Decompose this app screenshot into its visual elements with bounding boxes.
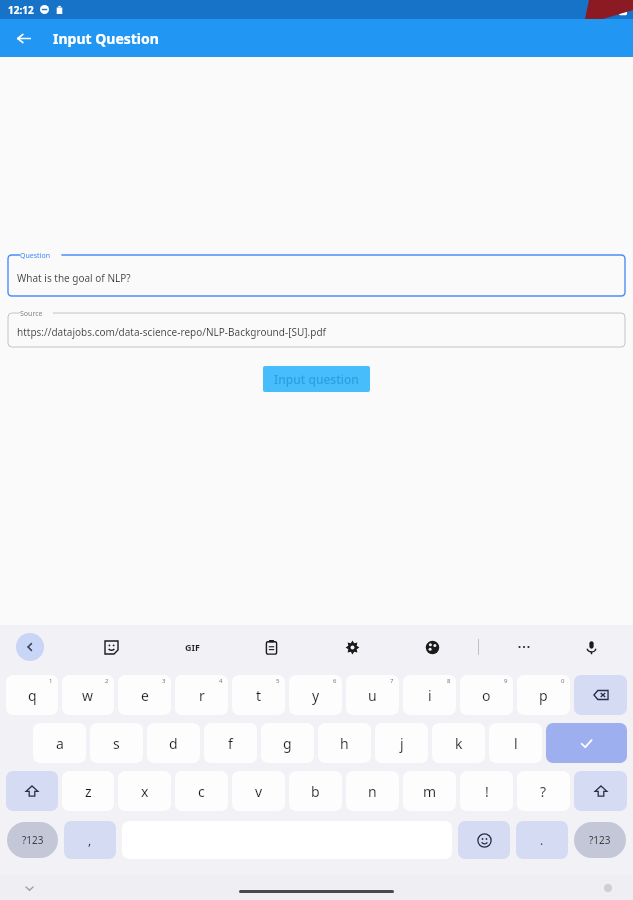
staticText: 2: [105, 677, 109, 685]
button[interactable]: i: [403, 675, 456, 715]
button[interactable]: Source: [8, 313, 625, 347]
button[interactable]: t: [232, 675, 285, 715]
button[interactable]: k: [432, 723, 485, 763]
button[interactable]: Keyboard switcher: [599, 879, 617, 897]
button[interactable]: ?: [517, 771, 570, 811]
button[interactable]: Stickers: [97, 633, 125, 661]
staticText: y: [312, 686, 320, 705]
button[interactable]: ,: [64, 821, 116, 859]
staticText: o: [482, 686, 491, 705]
button[interactable]: h: [318, 723, 371, 763]
staticText: 5: [276, 677, 280, 685]
staticText: k: [455, 734, 463, 753]
button[interactable]: ?123: [7, 822, 58, 858]
button[interactable]: Input question: [263, 366, 370, 392]
button[interactable]: Question: [8, 255, 625, 296]
button[interactable]: GIF: [178, 633, 206, 661]
button[interactable]: n: [346, 771, 399, 811]
staticText: e: [141, 686, 149, 705]
button[interactable]: Hide keyboard: [18, 877, 40, 899]
staticText: 6: [333, 677, 337, 685]
staticText: s: [113, 734, 120, 753]
button[interactable]: Backspace: [574, 675, 627, 715]
staticText: i: [428, 686, 432, 705]
staticText: 0: [561, 677, 565, 685]
staticText: https://datajobs.com/data-science-repo/N…: [17, 325, 326, 339]
staticText: Question: [20, 251, 50, 261]
button[interactable]: d: [147, 723, 200, 763]
button[interactable]: v: [232, 771, 285, 811]
button[interactable]: .: [516, 821, 568, 859]
staticText: a: [56, 734, 64, 753]
button[interactable]: c: [175, 771, 228, 811]
button[interactable]: l: [489, 723, 542, 763]
button[interactable]: Themes: [418, 633, 446, 661]
button[interactable]: j: [375, 723, 428, 763]
staticText: t: [256, 686, 262, 705]
staticText: !: [485, 782, 489, 801]
staticText: q: [28, 686, 37, 705]
staticText: 1: [49, 677, 53, 685]
staticText: g: [283, 734, 292, 753]
staticText: Input Question: [53, 29, 159, 48]
staticText: b: [311, 782, 320, 801]
staticText: u: [368, 686, 377, 705]
staticText: z: [85, 782, 92, 801]
staticText: h: [340, 734, 349, 753]
staticText: ?: [540, 782, 547, 801]
button[interactable]: e: [118, 675, 171, 715]
button[interactable]: r: [175, 675, 228, 715]
staticText: w: [82, 686, 94, 705]
staticText: p: [539, 686, 548, 705]
button[interactable]: q: [6, 675, 58, 715]
button[interactable]: s: [90, 723, 143, 763]
button[interactable]: f: [204, 723, 257, 763]
button[interactable]: Shift: [6, 771, 58, 811]
button[interactable]: Enter: [546, 723, 627, 763]
staticText: c: [198, 782, 205, 801]
button[interactable]: x: [118, 771, 171, 811]
button[interactable]: m: [403, 771, 456, 811]
staticText: d: [169, 734, 178, 753]
button[interactable]: Voice input: [577, 633, 605, 661]
button[interactable]: Clipboard: [257, 633, 285, 661]
staticText: ?123: [22, 833, 44, 847]
button[interactable]: b: [289, 771, 342, 811]
staticText: .: [540, 832, 544, 848]
staticText: Input question: [274, 371, 359, 387]
button[interactable]: Back: [12, 27, 34, 49]
staticText: GIF: [185, 641, 200, 653]
staticText: 3: [162, 677, 166, 685]
staticText: n: [368, 782, 377, 801]
button[interactable]: u: [346, 675, 399, 715]
button[interactable]: w: [62, 675, 114, 715]
staticText: 8: [447, 677, 451, 685]
button[interactable]: p: [517, 675, 570, 715]
staticText: ,: [88, 832, 92, 848]
button[interactable]: Settings: [338, 633, 366, 661]
button[interactable]: g: [261, 723, 314, 763]
button[interactable]: Expand toolbar: [16, 633, 44, 661]
button[interactable]: z: [62, 771, 114, 811]
staticText: 7: [390, 677, 394, 685]
button[interactable]: Emoji: [458, 821, 510, 859]
button[interactable]: o: [460, 675, 513, 715]
staticText: r: [199, 686, 205, 705]
staticText: j: [400, 734, 404, 753]
staticText: ?123: [589, 833, 611, 847]
button[interactable]: More options: [510, 633, 538, 661]
staticText: 12:12: [8, 3, 34, 17]
button[interactable]: Shift: [574, 771, 627, 811]
staticText: f: [228, 734, 233, 753]
staticText: 4: [219, 677, 223, 685]
button[interactable]: !: [460, 771, 513, 811]
staticText: x: [141, 782, 149, 801]
staticText: 9: [504, 677, 508, 685]
button[interactable]: y: [289, 675, 342, 715]
staticText: Source: [20, 309, 43, 319]
button[interactable]: ?123: [574, 822, 626, 858]
staticText: What is the goal of NLP?: [17, 271, 131, 285]
button[interactable]: a: [33, 723, 86, 763]
staticText: m: [423, 782, 437, 801]
